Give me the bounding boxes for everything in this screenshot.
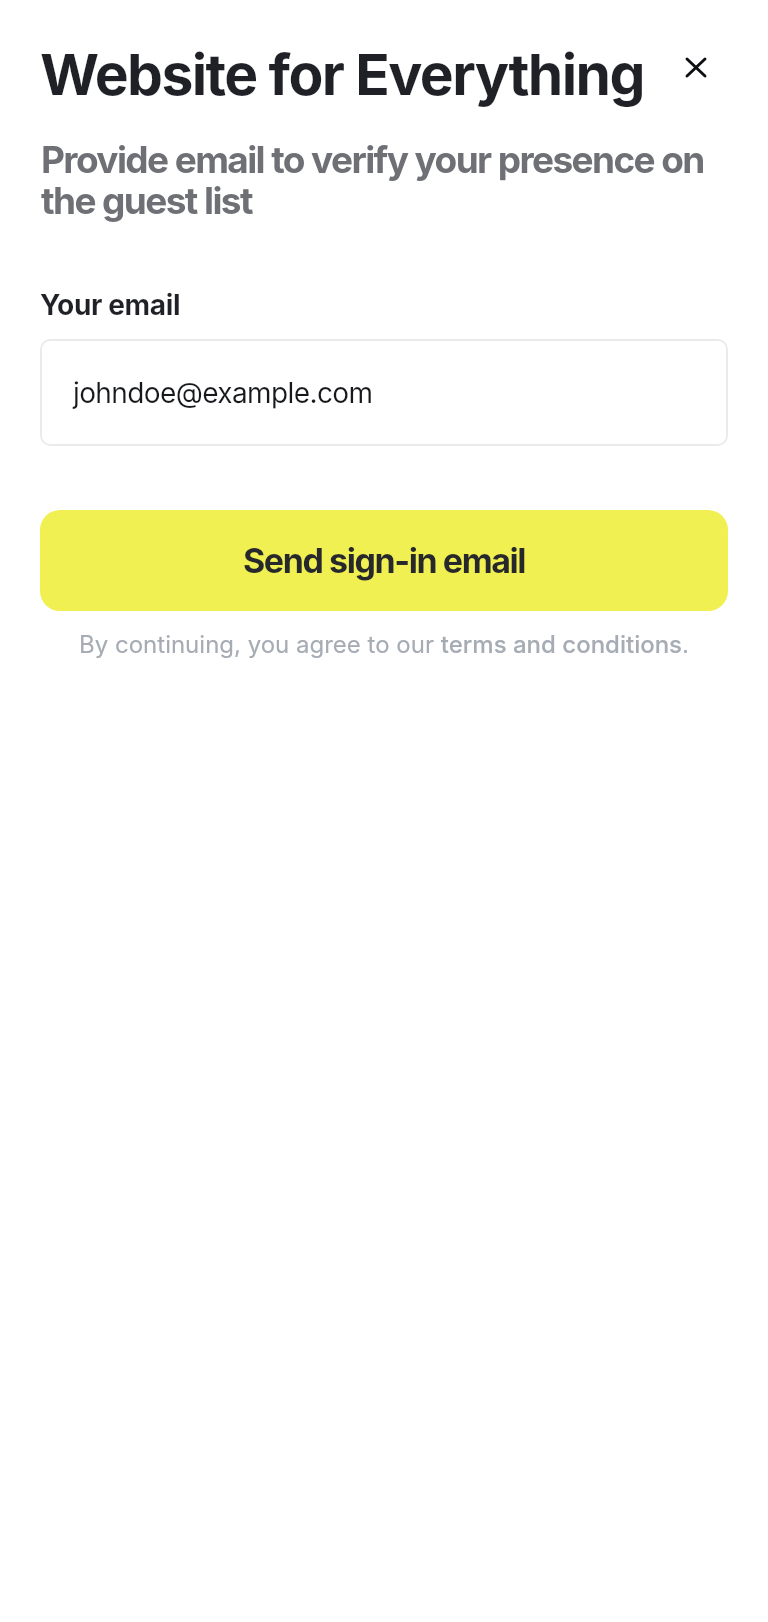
staticText: Provide email to verify your presence on… (41, 137, 721, 223)
staticText: johndoe@example.com (73, 376, 373, 410)
staticText: Send sign-in email (243, 540, 526, 581)
button[interactable]: johndoe@example.com (40, 339, 728, 446)
button[interactable]: By continuing, you agree to our terms an… (0, 630, 768, 659)
staticText: Your email (40, 288, 181, 322)
staticText: Website for Everything (40, 40, 644, 109)
staticText: By continuing, you agree to our terms an… (0, 630, 768, 659)
button[interactable]: Close (664, 35, 728, 99)
button[interactable]: Send sign-in email (40, 510, 728, 611)
